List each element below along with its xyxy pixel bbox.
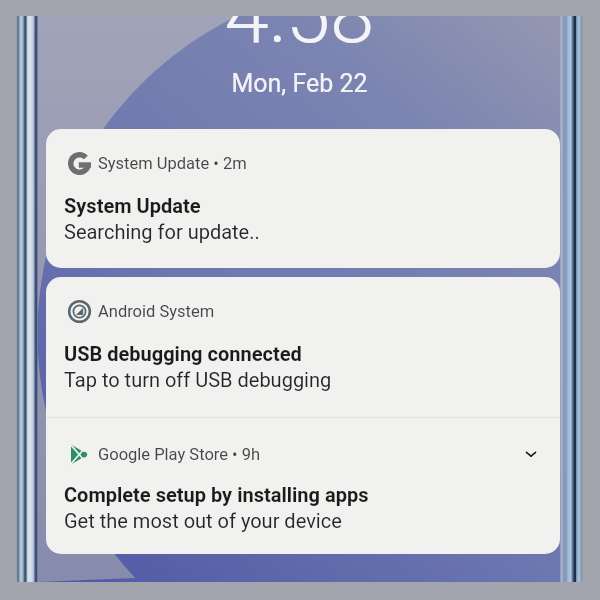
staticText: Searching for update..	[64, 220, 260, 243]
button[interactable]: Google Play Store • 9h	[46, 418, 560, 554]
staticText: USB debugging connected	[64, 342, 302, 365]
staticText: 4:58	[38, 16, 561, 62]
staticText: Get the most out of your device	[64, 509, 342, 532]
staticText: Google Play Store • 9h	[98, 445, 261, 464]
button[interactable]: System Update • 2m	[46, 129, 560, 268]
staticText: Tap to turn off USB debugging	[64, 368, 332, 391]
staticText: Mon, Feb 22	[38, 69, 561, 98]
button[interactable]: Android System	[46, 277, 560, 417]
button[interactable]: Expand notification	[518, 441, 544, 467]
staticText: Android System	[98, 302, 215, 321]
staticText: System Update	[64, 194, 201, 217]
staticText: Complete setup by installing apps	[64, 483, 369, 506]
staticText: System Update • 2m	[98, 154, 247, 173]
